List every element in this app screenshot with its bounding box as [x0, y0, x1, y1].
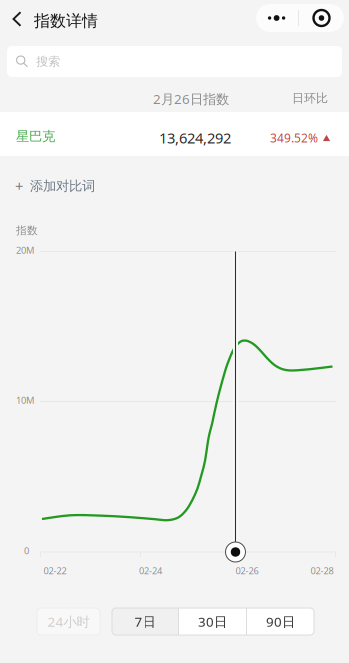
staticText: 30日	[198, 613, 227, 630]
staticText: 0	[24, 544, 29, 557]
staticText: 星巴克	[16, 128, 55, 144]
staticText: 02-28	[310, 564, 333, 577]
button[interactable]: Back	[0, 2, 34, 36]
staticText: 24小时	[47, 613, 89, 630]
staticText: 02-24	[139, 564, 162, 577]
staticText: 添加对比词	[30, 178, 95, 194]
staticText: 日环比	[292, 91, 328, 106]
staticText: 02-22	[43, 564, 66, 577]
staticText: 90日	[266, 613, 295, 630]
button[interactable]: 90日	[247, 608, 314, 635]
staticText: 02-26	[235, 564, 258, 577]
staticText: 349.52%	[270, 130, 318, 146]
button[interactable]: More	[256, 4, 298, 32]
staticText: +	[15, 176, 23, 196]
staticText: 13,624,292	[159, 128, 231, 147]
staticText: 指数详情	[34, 11, 98, 31]
button[interactable]: 24小时	[37, 608, 100, 635]
button[interactable]: 7日	[112, 608, 178, 635]
button[interactable]: Close	[299, 4, 344, 32]
staticText: 10M	[16, 394, 34, 406]
button[interactable]: 30日	[179, 608, 246, 635]
button[interactable]: 搜索	[7, 46, 342, 77]
staticText: 指数	[16, 224, 38, 237]
staticText: 7日	[134, 613, 155, 630]
staticText: 2月26日指数	[153, 90, 229, 108]
staticText: 搜索	[36, 54, 60, 69]
staticText: 20M	[16, 244, 34, 256]
button[interactable]: +	[0, 171, 140, 201]
